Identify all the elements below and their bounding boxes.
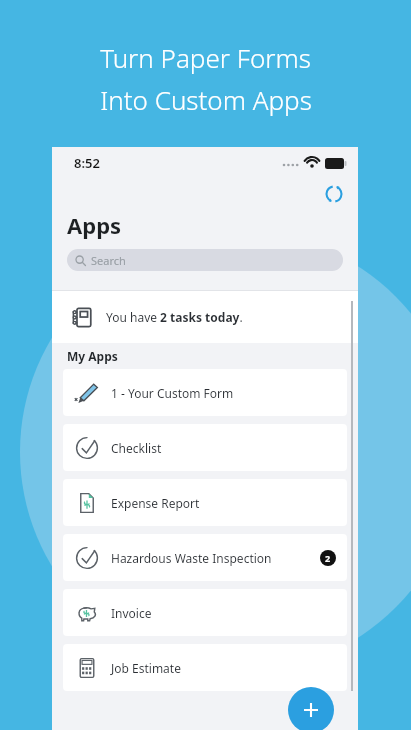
staticText: 8:52	[74, 154, 100, 172]
staticText: Invoice	[111, 605, 347, 621]
button[interactable]: Invoice	[63, 589, 347, 636]
button[interactable]: Search	[67, 249, 343, 271]
staticText: Job Estimate	[111, 660, 347, 676]
button[interactable]: Refresh	[323, 183, 345, 205]
button[interactable]: Add	[288, 687, 334, 730]
button[interactable]: Expense Report	[63, 479, 347, 526]
staticText: 1 - Your Custom Form	[111, 385, 347, 401]
button[interactable]: You have 2 tasks today.	[52, 291, 358, 343]
staticText: Apps	[67, 210, 122, 240]
staticText: Checklist	[111, 440, 347, 456]
staticText: You have 2 tasks today.	[106, 309, 243, 325]
button[interactable]: Hazardous Waste Inspection	[63, 534, 347, 581]
staticText: Hazardous Waste Inspection	[111, 550, 320, 566]
staticText: 2	[325, 552, 331, 564]
staticText: Turn Paper Forms	[100, 40, 311, 75]
staticText: Search	[91, 253, 126, 268]
staticText: Into Custom Apps	[100, 82, 312, 117]
staticText: Expense Report	[111, 495, 347, 511]
button[interactable]: Checklist	[63, 424, 347, 471]
staticText: My Apps	[67, 348, 118, 364]
button[interactable]: 1 - Your Custom Form	[63, 369, 347, 416]
button[interactable]: Job Estimate	[63, 644, 347, 691]
